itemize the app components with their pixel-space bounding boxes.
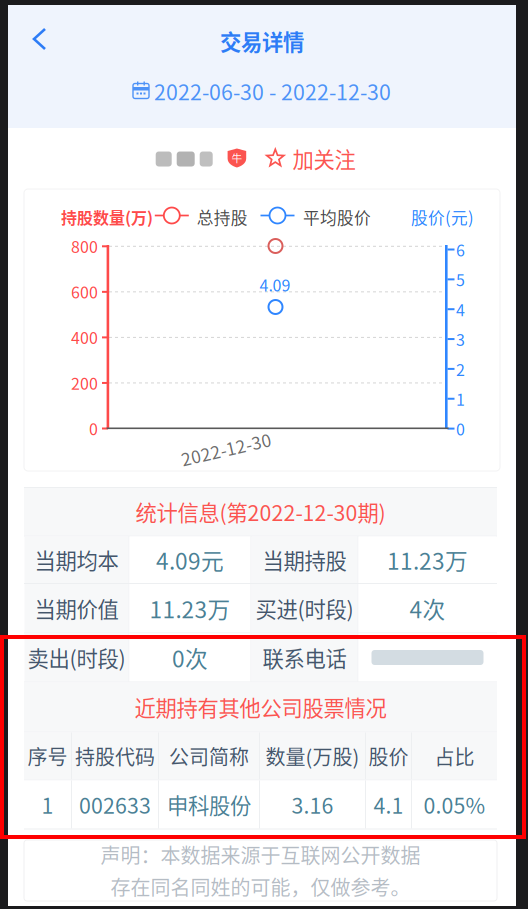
staticText: 持股代码	[75, 741, 155, 770]
staticText: 0	[89, 417, 98, 440]
staticText: 2022-12-30	[180, 435, 272, 461]
staticText: 800	[71, 234, 98, 258]
staticText: 2022-06-30 - 2022-12-30	[154, 76, 391, 106]
staticText: 11.23万	[387, 543, 468, 576]
staticText: 002633	[79, 789, 151, 820]
staticText: 4.09元	[156, 543, 224, 576]
staticText: 600	[71, 280, 98, 303]
staticText: 总持股	[197, 205, 248, 229]
staticText: 卖出(时段)	[27, 642, 125, 673]
staticText: 4.1	[373, 789, 403, 820]
button[interactable]: 加关注	[267, 145, 359, 171]
staticText: 2	[456, 357, 465, 380]
staticText: 声明：本数据来源于互联网公开数据	[100, 840, 420, 869]
staticText: 3	[456, 327, 465, 351]
staticText: 4.09	[259, 273, 290, 296]
staticText: 6	[456, 238, 465, 261]
staticText: 股价(元)	[411, 205, 474, 229]
staticText: 当期价值	[34, 593, 118, 624]
staticText: 持股数量(万)	[61, 205, 153, 229]
staticText: 联系电话	[262, 642, 346, 673]
staticText: 1	[456, 387, 465, 410]
staticText: 统计信息(第2022-12-30期)	[135, 496, 385, 527]
staticText: 占比	[434, 741, 474, 770]
staticText: 股价	[368, 741, 408, 770]
staticText: 5	[456, 268, 465, 291]
staticText: 近期持有其他公司股票情况	[134, 692, 386, 722]
staticText: 1	[41, 789, 53, 820]
staticText: 11.23万	[149, 592, 230, 625]
staticText: 加关注	[293, 143, 356, 174]
staticText: 0次	[172, 641, 208, 674]
staticText: 0.05%	[423, 789, 485, 820]
staticText: 3.16	[291, 789, 333, 820]
staticText: 牛	[231, 150, 242, 165]
staticText: 当期均本	[34, 544, 118, 575]
button[interactable]: 返回	[24, 17, 74, 61]
staticText: 买进(时段)	[255, 593, 353, 624]
staticText: 4次	[409, 592, 445, 625]
staticText: 200	[71, 371, 98, 394]
staticText: 400	[71, 325, 98, 349]
staticText: 公司简称	[169, 741, 249, 770]
staticText: 0	[456, 417, 465, 440]
staticText: 4	[456, 298, 465, 321]
staticText: 平均股价	[303, 205, 371, 229]
staticText: 申科股份	[167, 789, 251, 820]
staticText: 交易详情	[220, 26, 304, 56]
staticText: 当期持股	[262, 544, 346, 575]
staticText: 序号	[27, 741, 67, 770]
staticText: 存在同名同姓的可能，仅做参考。	[110, 872, 410, 901]
staticText: 数量(万股)	[265, 741, 359, 770]
